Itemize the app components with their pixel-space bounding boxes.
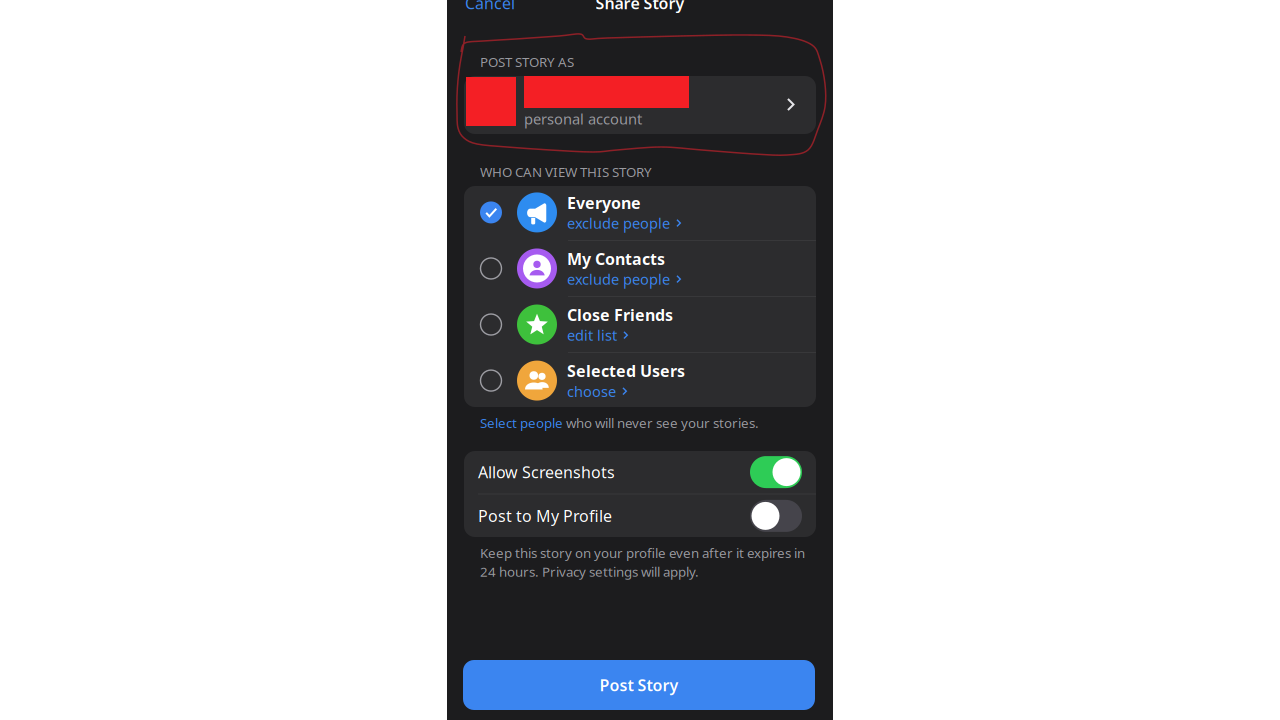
staticText: Selected Users: [567, 360, 685, 381]
button[interactable]: Everyone: [464, 185, 816, 240]
button[interactable]: Selected Users: [464, 353, 816, 408]
staticText: choose: [567, 381, 616, 401]
staticText: Everyone: [567, 192, 641, 213]
staticText: exclude people: [567, 213, 670, 233]
staticText: exclude people: [567, 269, 670, 289]
button[interactable]: Close Friends: [464, 297, 816, 352]
staticText: My Contacts: [567, 248, 665, 269]
button[interactable]: exclude people: [567, 269, 683, 289]
staticText: Select people: [480, 414, 563, 432]
button[interactable]: choose: [567, 381, 629, 401]
button[interactable]: Allow Screenshots: [464, 451, 816, 494]
staticText: Cancel: [465, 0, 515, 14]
staticText: 24 hours. Privacy settings will apply.: [480, 563, 699, 580]
button[interactable]: exclude people: [567, 213, 683, 233]
staticText: POST STORY AS: [480, 53, 574, 71]
staticText: personal account: [524, 109, 642, 128]
staticText: Close Friends: [567, 304, 673, 325]
staticText: Keep this story on your profile even aft…: [480, 544, 805, 562]
staticText: Post to My Profile: [478, 505, 612, 526]
button[interactable]: edit list: [567, 325, 630, 345]
button[interactable]: Select people: [480, 414, 563, 432]
staticText: Allow Screenshots: [478, 461, 615, 483]
staticText: Share Story: [595, 0, 684, 14]
staticText: who will never see your stories.: [563, 414, 759, 432]
button[interactable]: Post Story: [463, 660, 815, 710]
button[interactable]: Cancel: [465, 0, 515, 18]
button[interactable]: personal account: [464, 76, 816, 134]
staticText: WHO CAN VIEW THIS STORY: [480, 163, 652, 181]
button[interactable]: My Contacts: [464, 241, 816, 296]
button[interactable]: Post to My Profile: [464, 494, 816, 537]
staticText: Post Story: [599, 674, 678, 696]
staticText: edit list: [567, 325, 617, 345]
